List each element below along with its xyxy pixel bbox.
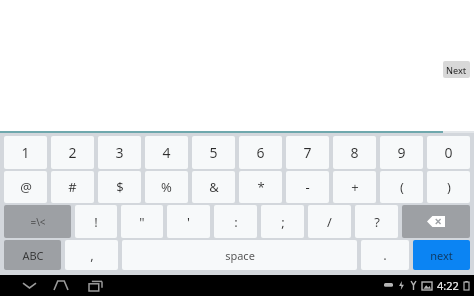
button[interactable]: =\< — [4, 205, 71, 238]
staticText: Next — [446, 64, 467, 76]
button[interactable]: * — [239, 171, 282, 203]
staticText: & — [209, 178, 219, 196]
button[interactable]: . — [361, 240, 409, 270]
staticText: 8 — [350, 143, 359, 162]
button[interactable]: + — [333, 171, 376, 203]
staticText: 7 — [303, 143, 312, 162]
button[interactable]: ; — [261, 205, 304, 238]
staticText: , — [90, 246, 94, 264]
button[interactable]: 2 — [51, 136, 94, 169]
button[interactable]: $ — [98, 171, 141, 203]
staticText: @ — [20, 178, 32, 196]
staticText: 5 — [209, 143, 218, 162]
staticText: 0 — [444, 143, 453, 162]
staticText: next — [430, 248, 453, 263]
staticText: ( — [400, 178, 404, 196]
staticText: space — [225, 248, 255, 263]
staticText: 9 — [397, 143, 406, 162]
staticText: ABC — [22, 248, 44, 263]
staticText: : — [234, 213, 238, 231]
staticText: 4 — [162, 143, 171, 162]
button[interactable]: Backspace — [402, 205, 470, 238]
button[interactable]: % — [145, 171, 188, 203]
button[interactable]: ? — [355, 205, 398, 238]
button[interactable]: / — [308, 205, 351, 238]
button[interactable]: , — [65, 240, 118, 270]
button[interactable]: ABC — [4, 240, 61, 270]
staticText: + — [351, 178, 359, 196]
button[interactable]: & — [192, 171, 235, 203]
button[interactable]: ( — [380, 171, 423, 203]
button[interactable]: 4 — [145, 136, 188, 169]
button[interactable]: 6 — [239, 136, 282, 169]
button[interactable]: 1 — [4, 136, 47, 169]
button[interactable]: 7 — [286, 136, 329, 169]
button[interactable]: ! — [75, 205, 117, 238]
button[interactable]: 9 — [380, 136, 423, 169]
button[interactable]: Recent apps — [78, 275, 112, 296]
staticText: # — [68, 178, 77, 196]
staticText: % — [161, 178, 172, 196]
staticText: * — [257, 178, 265, 196]
staticText: / — [327, 213, 332, 231]
staticText: ! — [94, 213, 98, 231]
button[interactable]: @ — [4, 171, 47, 203]
button[interactable]: # — [51, 171, 94, 203]
button[interactable]: ' — [167, 205, 210, 238]
button[interactable]: 5 — [192, 136, 235, 169]
button[interactable]: ) — [427, 171, 470, 203]
staticText: " — [139, 213, 145, 231]
staticText: ' — [187, 213, 190, 231]
button[interactable]: : — [214, 205, 257, 238]
button[interactable]: 8 — [333, 136, 376, 169]
staticText: 6 — [256, 143, 265, 162]
staticText: 2 — [68, 143, 77, 162]
button[interactable]: next — [413, 240, 470, 270]
staticText: ) — [447, 178, 451, 196]
button[interactable]: Home — [44, 275, 78, 296]
button[interactable]: space — [122, 240, 357, 270]
staticText: =\< — [30, 215, 46, 229]
staticText: 3 — [115, 143, 124, 162]
button[interactable]: 0 — [427, 136, 470, 169]
staticText: - — [305, 178, 310, 196]
staticText: ? — [374, 213, 380, 231]
button[interactable]: Next — [443, 61, 470, 78]
button[interactable]: 3 — [98, 136, 141, 169]
staticText: 1 — [21, 143, 30, 162]
staticText: . — [383, 246, 387, 264]
button[interactable]: - — [286, 171, 329, 203]
staticText: ; — [281, 213, 285, 231]
staticText: 4:22 — [437, 278, 459, 293]
button[interactable]: Hide keyboard — [14, 275, 44, 296]
button[interactable]: " — [121, 205, 163, 238]
staticText: $ — [116, 178, 124, 196]
